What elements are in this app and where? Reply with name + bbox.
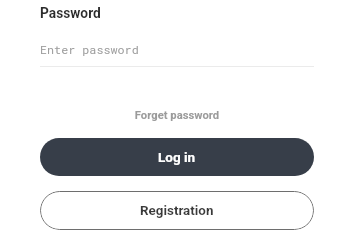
staticText: Forget password	[40, 109, 314, 122]
staticText: Password	[40, 5, 101, 21]
staticText: Registration	[140, 203, 214, 219]
staticText: Log in	[158, 149, 196, 165]
button[interactable]: Enter password	[40, 42, 314, 67]
button[interactable]: Forget password	[40, 109, 314, 125]
button[interactable]: Registration	[40, 191, 314, 230]
staticText: Enter password	[40, 42, 139, 57]
button[interactable]: Log in	[40, 138, 314, 176]
